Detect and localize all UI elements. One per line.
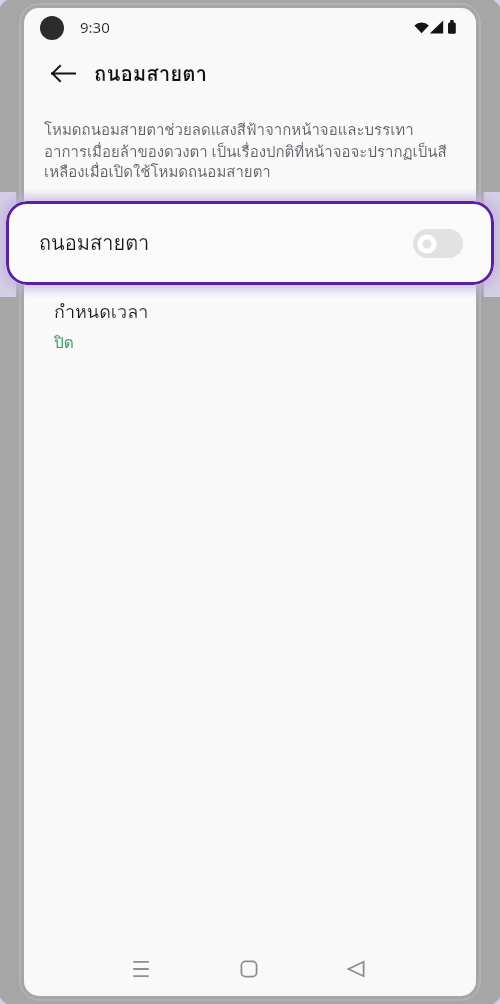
button[interactable]: Night light toggle xyxy=(413,229,463,258)
staticText: ถนอมสายตา xyxy=(39,227,150,259)
button[interactable]: กำหนดเวลา xyxy=(24,291,476,349)
staticText: อาการเมื่อยล้าของดวงตา เป็นเรื่องปกติที่… xyxy=(44,140,447,164)
staticText: โหมดถนอมสายตาช่วยลดแสงสีฟ้าจากหน้าจอและบ… xyxy=(44,118,414,142)
staticText: เหลืองเมื่อเปิดใช้โหมดถนอมสายตา xyxy=(44,160,271,184)
staticText: 9:30 xyxy=(80,17,110,37)
button[interactable]: ถนอมสายตา xyxy=(6,201,494,285)
button[interactable]: Home xyxy=(225,945,273,993)
staticText: ปิด xyxy=(54,330,74,349)
button[interactable]: Recents xyxy=(117,945,165,993)
button[interactable]: Back xyxy=(332,945,380,993)
staticText: ถนอมสายตา xyxy=(94,57,208,90)
button[interactable]: Back xyxy=(42,52,85,95)
staticText: กำหนดเวลา xyxy=(54,297,149,326)
